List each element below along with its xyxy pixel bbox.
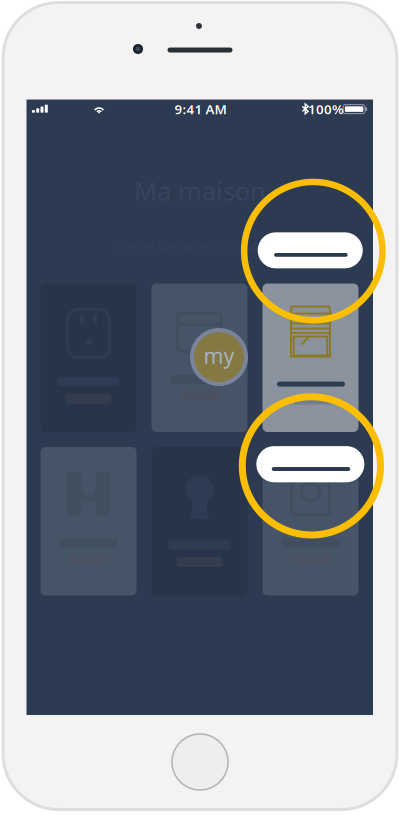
- button[interactable]: Eau: [151, 283, 247, 432]
- button[interactable]: Éclairage: [151, 447, 247, 595]
- staticText: 100%: [308, 100, 344, 118]
- staticText: my: [203, 341, 234, 370]
- button[interactable]: Compteur: [262, 447, 358, 595]
- staticText: Tous vos contrats en un coup d'œil: [112, 238, 287, 253]
- staticText: 9:41 AM: [174, 100, 226, 118]
- staticText: Ma maison: [134, 174, 266, 208]
- button[interactable]: Chauffage: [262, 283, 358, 432]
